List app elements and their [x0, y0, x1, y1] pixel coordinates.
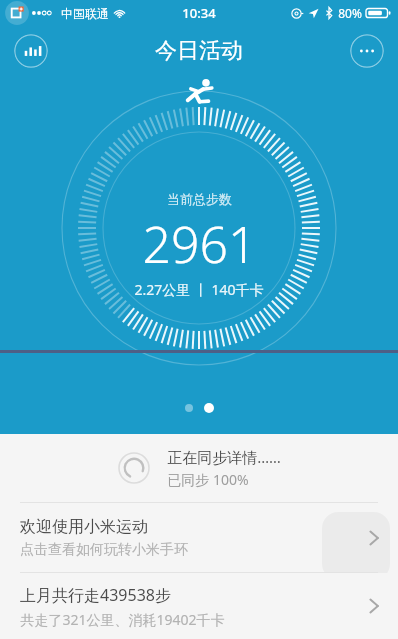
- staticText: 欢迎使用小米运动: [20, 517, 148, 537]
- staticText: 中国联通: [61, 6, 109, 21]
- button[interactable]: 欢迎使用小米运动: [0, 503, 398, 572]
- staticText: 2.27公里 丨 140千卡: [134, 280, 264, 299]
- button[interactable]: 正在同步详情……: [0, 434, 398, 502]
- staticText: 点击查看如何玩转小米手环: [20, 541, 188, 559]
- staticText: 今日活动: [155, 37, 243, 65]
- staticText: 10:34: [182, 4, 216, 22]
- staticText: 当前总步数: [167, 191, 232, 207]
- staticText: 2961: [142, 210, 257, 278]
- staticText: 上月共行走439538步: [20, 584, 171, 606]
- button[interactable]: More options: [350, 34, 384, 68]
- button[interactable]: 上月共行走439538步: [0, 573, 398, 639]
- staticText: 正在同步详情……: [167, 447, 281, 467]
- button[interactable]: Statistics: [14, 34, 48, 68]
- staticText: 已同步 100%: [167, 470, 249, 489]
- staticText: 80%: [338, 5, 362, 21]
- staticText: 共走了321公里、消耗19402千卡: [20, 610, 225, 629]
